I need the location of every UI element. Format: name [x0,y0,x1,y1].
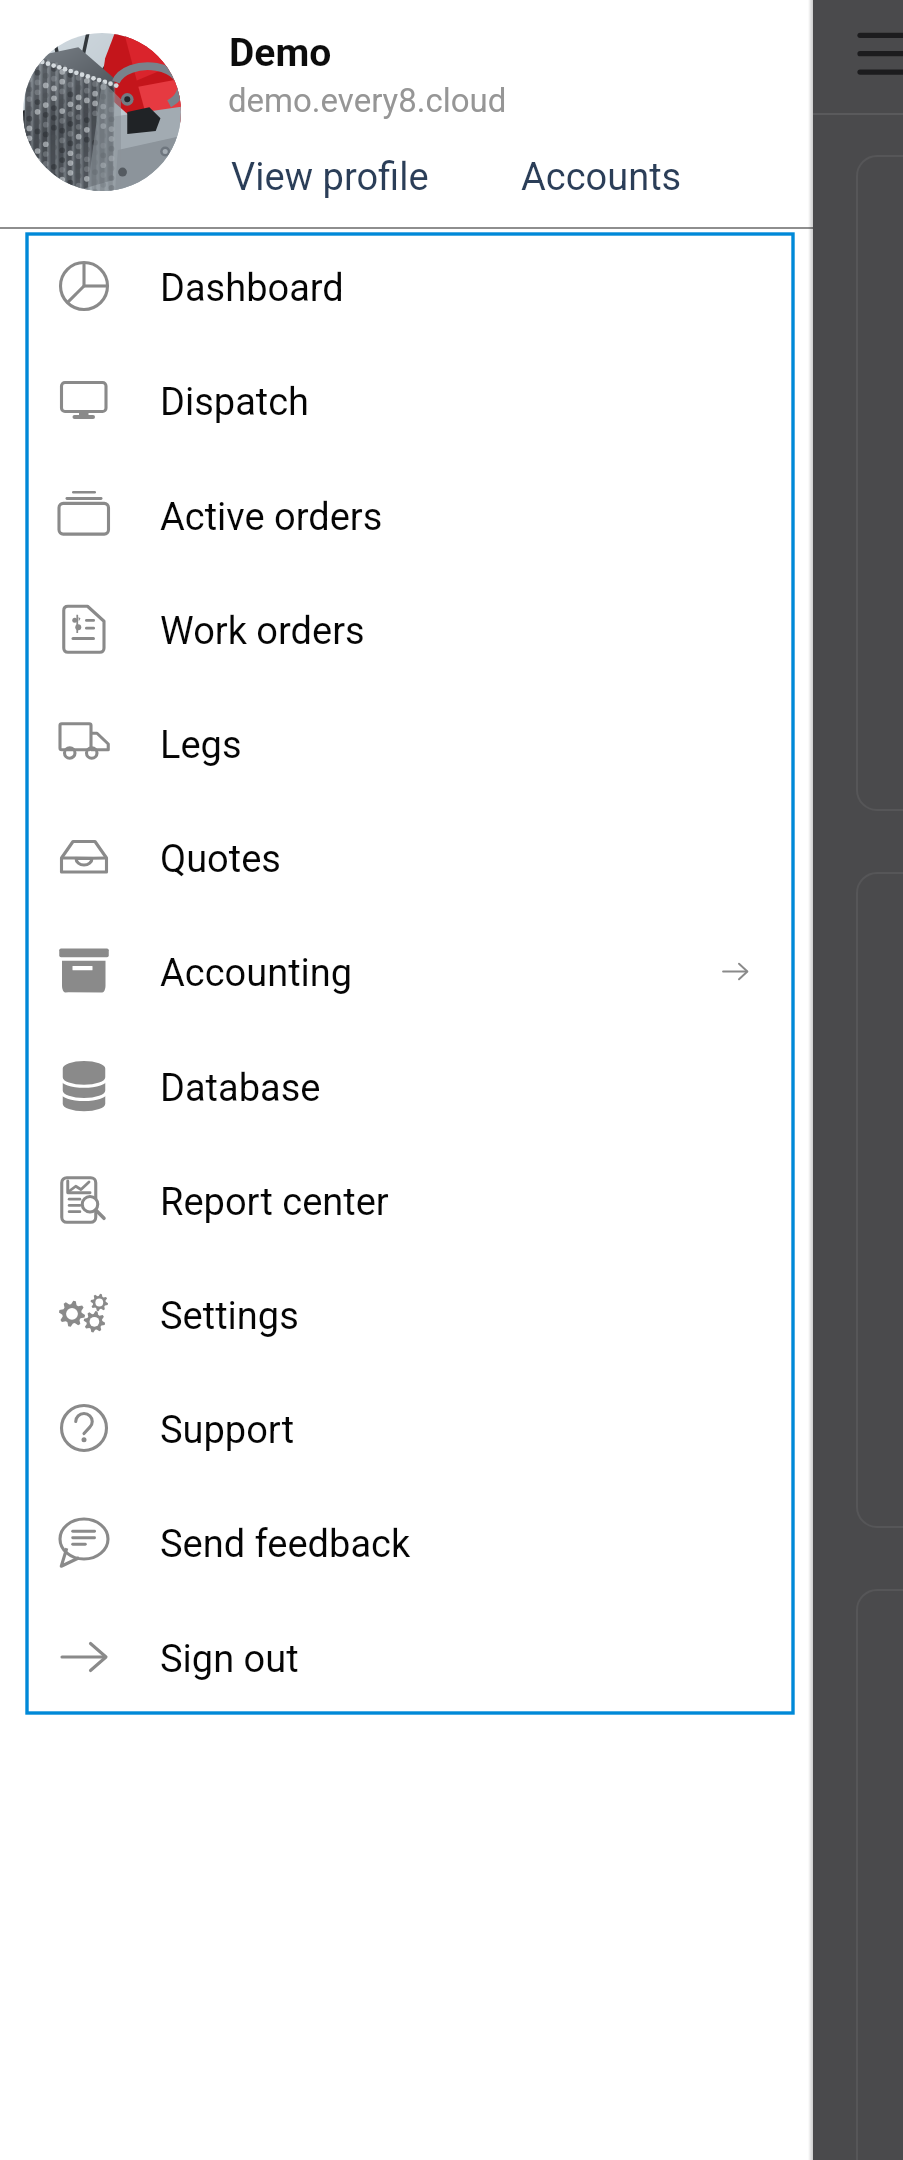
button[interactable]: Active orders [0,458,813,572]
button[interactable]: Open navigation menu [851,12,903,72]
staticText: Quotes [160,837,281,882]
button[interactable]: Work orders [0,572,813,686]
staticText: Settings [160,1294,299,1339]
staticText: Accounts [521,155,682,200]
staticText: Dashboard [160,266,344,311]
button[interactable]: Settings [0,1257,813,1371]
button[interactable]: Close navigation drawer [813,0,903,2160]
staticText: Active orders [160,495,383,540]
button[interactable]: Database [0,1029,813,1143]
button[interactable]: View profile [224,149,436,206]
button[interactable]: Dashboard [0,229,813,343]
button[interactable]: Accounts [514,149,689,206]
staticText: Report center [160,1180,389,1225]
button[interactable]: Quotes [0,800,813,914]
button[interactable]: Dispatch [0,343,813,457]
staticText: View profile [231,155,429,200]
staticText: Dispatch [160,380,310,425]
button[interactable]: Accounting [0,914,813,1028]
staticText: Send feedback [160,1522,411,1567]
button[interactable]: Sign out [0,1600,813,1714]
button[interactable]: Report center [0,1143,813,1257]
staticText: Work orders [160,609,365,654]
staticText: Database [160,1066,321,1111]
staticText: Support [160,1408,295,1453]
button[interactable]: Profile photo [23,33,181,191]
button[interactable]: Support [0,1371,813,1485]
staticText: Sign out [160,1637,299,1682]
staticText: Demo [229,30,332,76]
staticText: Accounting [160,951,353,996]
staticText: Legs [160,723,242,768]
button[interactable]: Legs [0,686,813,800]
staticText: demo.every8.cloud [228,81,507,120]
button[interactable]: Send feedback [0,1485,813,1599]
